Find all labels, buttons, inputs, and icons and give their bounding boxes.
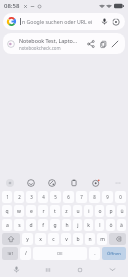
button[interactable]: Edit [109,38,121,50]
button[interactable]: a [2,219,12,231]
button[interactable]: 1 [2,191,12,203]
staticText: k [87,222,90,229]
staticText: 08:58 [4,2,20,10]
button[interactable]: 4 [38,191,48,203]
staticText: c [52,236,55,243]
staticText: p [109,208,113,215]
button[interactable]: Clipboard suggestion [4,177,16,189]
button[interactable]: c [48,233,59,245]
button[interactable]: m [97,233,107,245]
button[interactable]: h [62,219,71,231]
button[interactable]: . [89,247,100,260]
button[interactable]: ä [117,219,126,231]
button[interactable]: j [73,219,82,231]
button[interactable]: s [14,219,24,231]
button[interactable]: !#1 [2,247,18,260]
staticText: d [29,222,33,229]
staticText: 8 [93,194,96,200]
staticText: 7 [80,194,83,200]
staticText: n Google suchen oder URL ei [22,18,93,25]
button[interactable]: z [62,205,71,217]
button[interactable]: Notebook Test, Lapto… [3,33,125,54]
button[interactable]: Öffnen [102,247,126,260]
button[interactable]: n [85,233,95,245]
staticText: m [100,236,105,243]
button[interactable]: / [20,247,31,260]
staticText: b [76,236,80,243]
button[interactable]: v [61,233,71,245]
button[interactable]: Shift [2,233,20,245]
button[interactable]: o [95,205,104,217]
staticText: Notebook Test, Lapto… [19,37,78,44]
staticText: 5 [54,194,57,200]
button[interactable]: r [38,205,48,217]
button[interactable]: b [73,233,83,245]
staticText: 0 [119,194,122,200]
button[interactable]: 8 [89,191,100,203]
button[interactable]: Voice search [99,16,110,27]
button[interactable]: e [26,205,36,217]
staticText: 3 [30,194,33,200]
staticText: e [30,208,33,215]
button[interactable]: Stickers [46,177,58,189]
staticText: h [65,222,69,229]
button[interactable]: Clipboard [68,177,80,189]
button[interactable]: 9 [102,191,113,203]
staticText: / [25,250,27,257]
button[interactable]: Share [85,38,97,50]
button[interactable]: 7 [76,191,87,203]
button[interactable]: y [22,233,33,245]
button[interactable]: d [26,219,36,231]
staticText: DE [57,251,63,257]
button[interactable]: i [84,205,93,217]
staticText: y [26,236,29,243]
staticText: u [76,208,80,215]
button[interactable]: 2 [14,191,24,203]
staticText: 2 [18,194,21,200]
button[interactable]: Copy link [97,38,109,50]
staticText: j [77,222,79,229]
button[interactable]: Voice input [0,262,32,277]
button[interactable]: ö [106,219,115,231]
staticText: g [53,222,57,229]
staticText: 6 [67,194,70,200]
staticText: ö [109,222,113,229]
button[interactable]: u [73,205,82,217]
staticText: 1 [6,194,9,200]
button[interactable]: More options [112,177,124,189]
staticText: 4 [42,194,45,200]
staticText: x [39,236,42,243]
staticText: f [42,222,44,229]
staticText: s [18,222,21,229]
button[interactable]: w [14,205,24,217]
button[interactable]: q [2,205,12,217]
button[interactable]: 6 [63,191,74,203]
staticText: z [65,208,68,215]
staticText: Öffnen [107,251,121,257]
button[interactable]: k [84,219,93,231]
button[interactable]: 0 [115,191,126,203]
button[interactable]: 5 [50,191,61,203]
button[interactable]: l [95,219,104,231]
button[interactable]: t [50,205,60,217]
button[interactable]: Google Lens [110,16,121,27]
button[interactable]: Emoji [25,177,37,189]
button[interactable]: 3 [26,191,36,203]
button[interactable]: DE [33,247,87,260]
staticText: o [98,208,102,215]
button[interactable]: x [35,233,46,245]
button[interactable]: Settings [90,177,102,189]
button[interactable]: n Google suchen oder URL ei [3,13,125,30]
staticText: r [42,208,45,215]
button[interactable]: Hide keyboard [96,262,128,277]
button[interactable]: Home [64,262,96,277]
button[interactable]: f [38,219,48,231]
staticText: 9 [106,194,109,200]
staticText: a [6,222,9,229]
button[interactable]: p [106,205,115,217]
button[interactable]: Recents [32,262,64,277]
staticText: q [5,208,9,215]
button[interactable]: g [50,219,60,231]
button[interactable]: Backspace [109,233,126,245]
button[interactable]: ü [117,205,126,217]
